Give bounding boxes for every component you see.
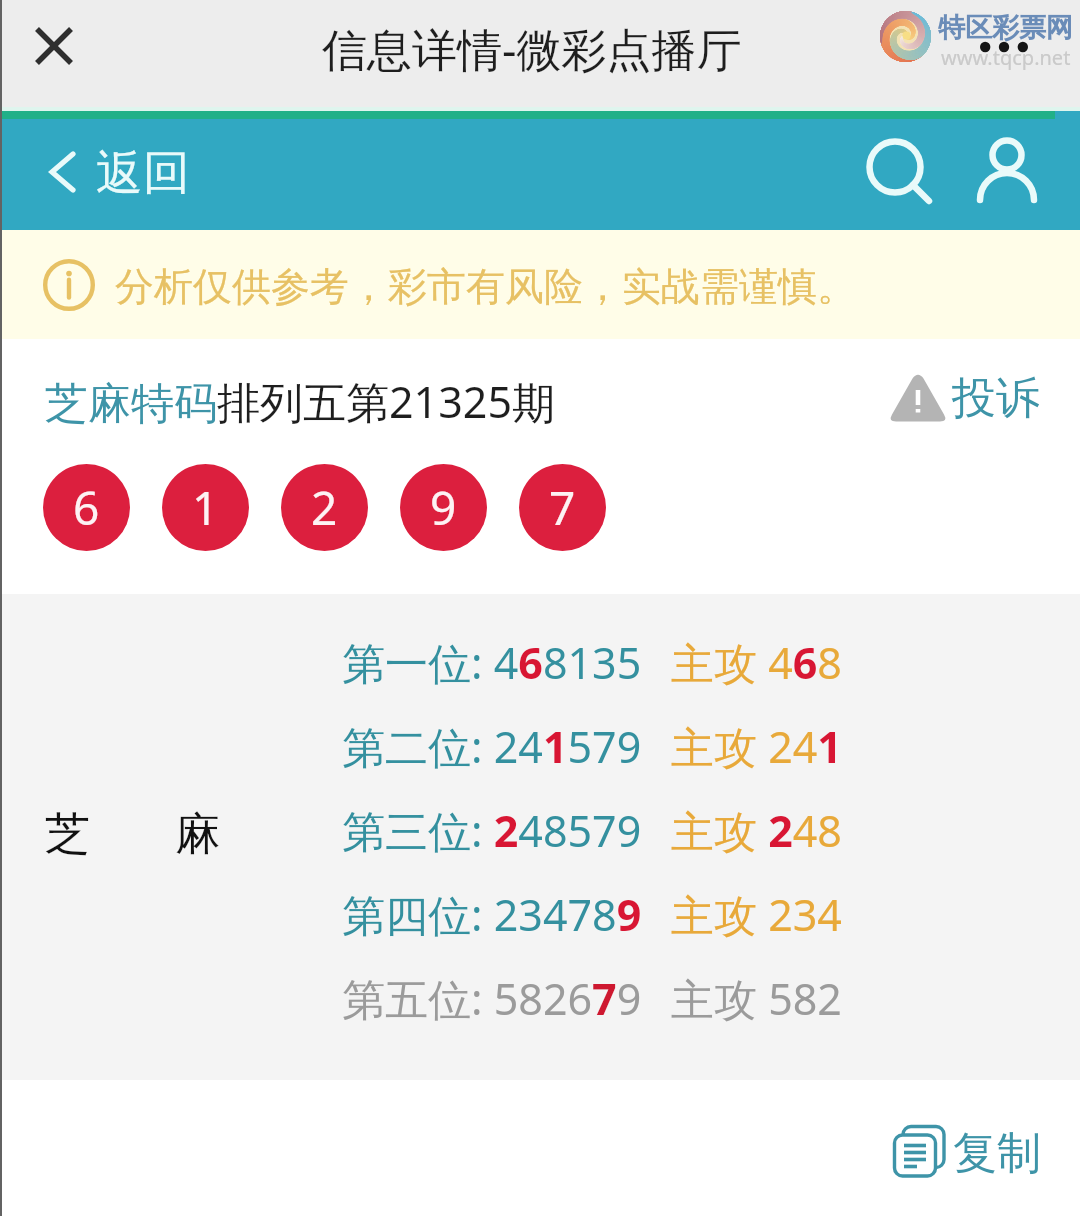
staticText: 6 xyxy=(73,476,100,539)
staticText: 第二位: 241579 xyxy=(342,717,642,776)
staticText: 主攻 582 xyxy=(671,969,842,1028)
button[interactable]: 1 xyxy=(162,464,249,551)
staticText: 主攻 241 xyxy=(671,717,842,776)
button[interactable]: 返回 xyxy=(40,139,190,211)
staticText: 投诉 xyxy=(952,371,1040,426)
staticText: 2 xyxy=(311,476,338,539)
button[interactable]: Close xyxy=(14,6,94,86)
staticText: 复制 xyxy=(953,1126,1041,1181)
staticText: 分析仅供参考，彩市有风险，实战需谨慎。 xyxy=(115,262,856,311)
staticText: 信息详情-微彩点播厅 xyxy=(322,18,742,79)
staticText: 返回 xyxy=(96,144,190,203)
button[interactable]: 7 xyxy=(519,464,606,551)
button[interactable]: 复制 xyxy=(893,1125,1041,1181)
staticText: 主攻 468 xyxy=(671,633,842,692)
button[interactable]: Account xyxy=(963,119,1051,207)
button[interactable]: 6 xyxy=(43,464,130,551)
button[interactable]: Search xyxy=(851,119,939,207)
staticText: 第三位: 248579 xyxy=(342,801,642,860)
staticText: 主攻 234 xyxy=(671,885,842,944)
staticText: 7 xyxy=(549,476,576,539)
staticText: 1 xyxy=(192,476,219,539)
staticText: 特区彩票网 xyxy=(938,11,1073,45)
staticText: 9 xyxy=(430,476,457,539)
staticText: 第四位: 234789 xyxy=(342,885,642,944)
staticText: 芝 xyxy=(45,806,90,863)
staticText: 第五位: 582679 xyxy=(342,969,642,1028)
staticText: 麻 xyxy=(175,806,220,863)
staticText: 主攻 248 xyxy=(671,801,842,860)
staticText: 芝麻特码排列五第21325期 xyxy=(45,372,555,431)
staticText: 第一位: 468135 xyxy=(342,633,642,692)
button[interactable]: 2 xyxy=(281,464,368,551)
button[interactable]: 9 xyxy=(400,464,487,551)
button[interactable]: 投诉 xyxy=(890,371,1040,426)
staticText: www.tqcp.net xyxy=(941,44,1071,71)
